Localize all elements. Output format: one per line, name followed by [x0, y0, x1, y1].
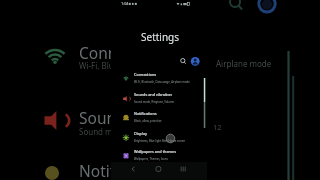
staticText: 12 [213, 122, 222, 132]
staticText: Wi-Fi, Blu [79, 60, 114, 71]
button[interactable]: Wallpapers and themes [118, 147, 207, 164]
staticText: Wallpapers, Themes, Icons [134, 157, 168, 161]
button[interactable]: Sounds and vibration [118, 90, 207, 107]
button[interactable] [190, 56, 200, 66]
button[interactable]: Connections [118, 70, 207, 87]
staticText: Sounds and vibration [134, 92, 172, 97]
button[interactable] [128, 164, 138, 174]
staticText: Display [134, 131, 147, 136]
button[interactable]: Notifications [118, 109, 207, 126]
button[interactable]: Display [118, 129, 207, 146]
staticText: Sound m [79, 126, 113, 137]
staticText: Connections [79, 42, 170, 63]
staticText: Settings [141, 30, 180, 44]
staticText: Notifications [134, 111, 157, 116]
staticText: Wallpapers and themes [134, 149, 177, 154]
staticText: 1:04 [121, 1, 129, 6]
staticText: Notificat [79, 160, 141, 180]
staticText: Airplane mode [216, 58, 272, 69]
button[interactable] [153, 164, 163, 174]
button[interactable] [179, 57, 187, 65]
staticText: Block, allow, prioritize [134, 119, 162, 123]
staticText: Sounds an [79, 107, 156, 128]
staticText: Wi-Fi, Bluetooth, Data usage, Airplane m… [134, 80, 190, 84]
staticText: Sound mode, Ringtone, Volume [134, 100, 174, 104]
staticText: Connections [134, 72, 157, 77]
button[interactable] [178, 164, 188, 174]
staticText: Brightness, Blue light filter, Home scre… [134, 139, 186, 143]
